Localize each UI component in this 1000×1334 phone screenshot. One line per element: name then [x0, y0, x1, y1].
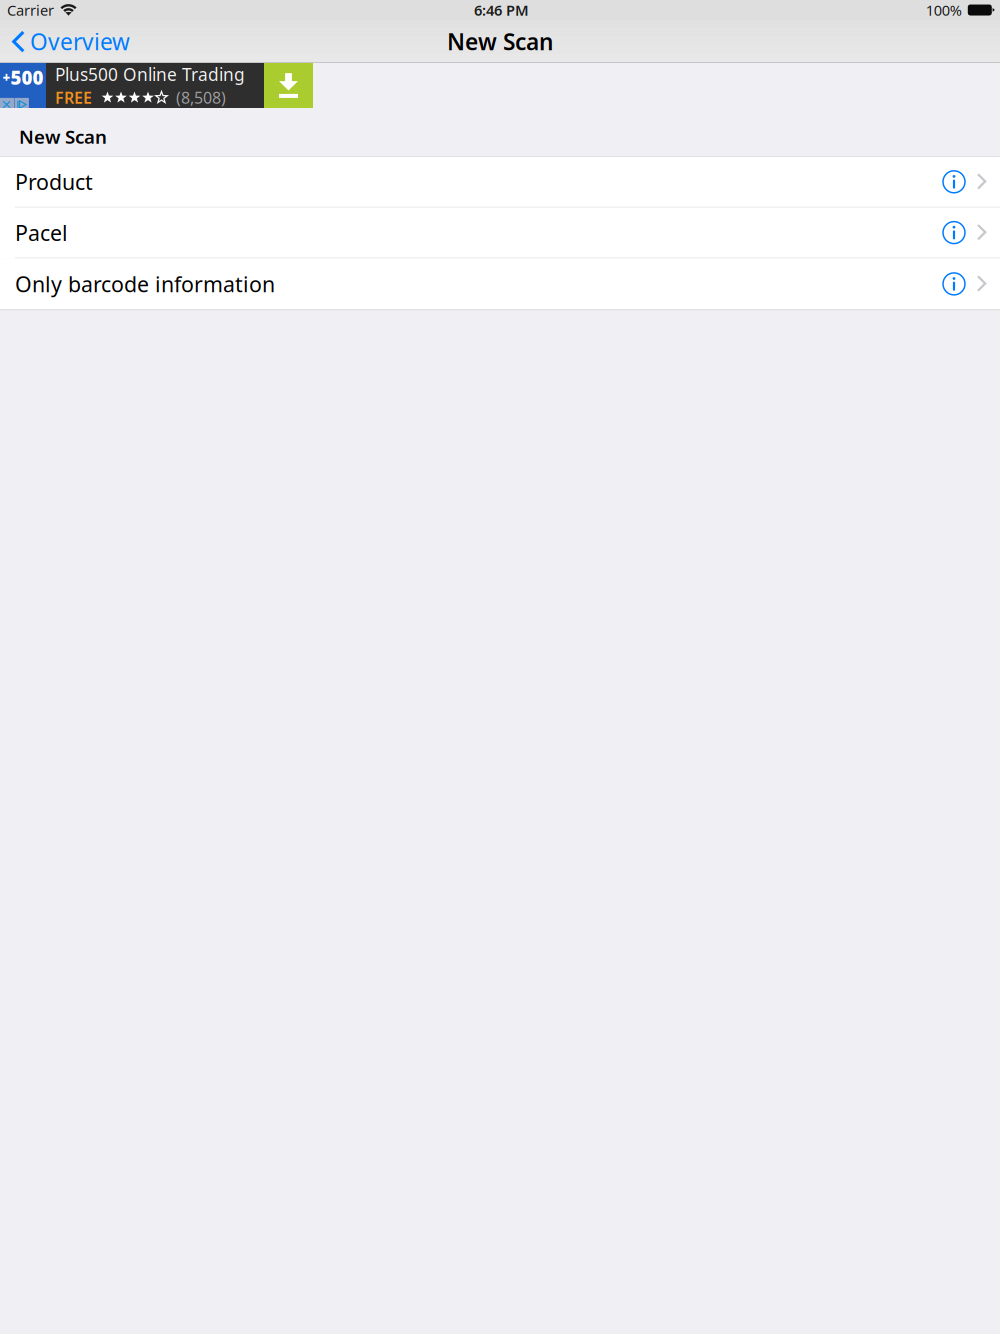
- staticText: (8,508): [176, 87, 226, 108]
- staticText: FREE: [55, 87, 92, 108]
- staticText: Carrier: [7, 0, 54, 20]
- staticText: Plus500 Online Trading: [55, 63, 245, 86]
- staticText: +: [2, 69, 10, 86]
- staticText: Pacel: [15, 218, 68, 247]
- staticText: 100%: [926, 0, 962, 20]
- button[interactable]: Only barcode information: [0, 258, 1000, 309]
- staticText: New Scan: [447, 26, 553, 56]
- staticText: Product: [15, 168, 93, 196]
- button[interactable]: Product: [0, 157, 1000, 208]
- button[interactable]: Pacel: [0, 208, 1000, 258]
- staticText: Only barcode information: [15, 270, 275, 298]
- staticText: Overview: [30, 26, 130, 56]
- button[interactable]: Advertisement: Plus500 Online Trading, f…: [0, 63, 1000, 108]
- staticText: New Scan: [19, 124, 107, 149]
- staticText: 6:46 PM: [474, 0, 529, 20]
- button[interactable]: Overview: [0, 20, 142, 63]
- staticText: 500: [10, 65, 43, 90]
